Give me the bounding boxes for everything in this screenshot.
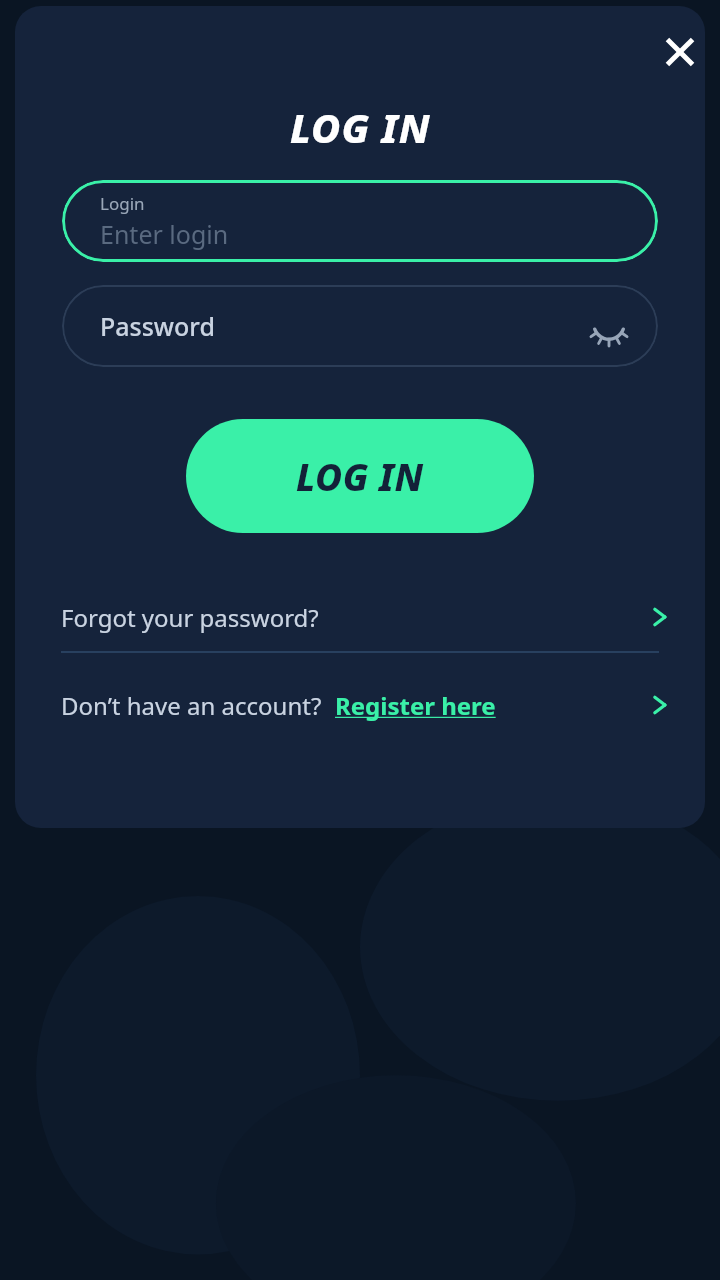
staticText: LOG IN: [296, 451, 424, 501]
staticText: Don’t have an account?: [61, 689, 322, 722]
button[interactable]: Show password: [582, 299, 636, 353]
button[interactable]: Login: [62, 180, 658, 262]
staticText: Enter login: [100, 217, 229, 251]
staticText: Forgot your password?: [61, 601, 319, 634]
staticText: LOG IN: [290, 100, 431, 154]
button[interactable]: LOG IN: [186, 419, 534, 533]
staticText: Login: [100, 192, 145, 215]
button[interactable]: Password: [62, 285, 658, 367]
button[interactable]: Close: [644, 16, 705, 88]
button[interactable]: Forgot your password?: [15, 581, 705, 653]
staticText: Register here: [335, 689, 496, 722]
staticText: Password: [100, 309, 215, 343]
button[interactable]: Don’t have an account?: [15, 669, 705, 741]
